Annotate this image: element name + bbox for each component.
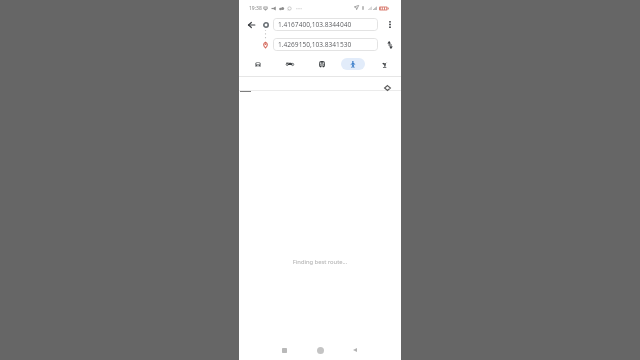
button[interactable]: Home <box>312 342 328 358</box>
staticText: 1.4167400,103.8344040 <box>278 20 352 29</box>
button[interactable]: Driving <box>246 58 270 70</box>
button[interactable]: Flights <box>373 58 397 70</box>
button[interactable]: More options <box>383 18 396 31</box>
button[interactable]: Transit <box>310 58 334 70</box>
button[interactable]: Two-wheeler <box>278 58 302 70</box>
button[interactable]: Back <box>243 17 259 33</box>
staticText: 1.4269150,103.8341530 <box>278 40 352 49</box>
button[interactable]: 1.4269150,103.8341530 <box>273 38 378 51</box>
button[interactable]: Back <box>347 342 363 358</box>
button[interactable]: 1.4167400,103.8344040 <box>273 18 378 31</box>
button[interactable]: Recent apps <box>276 342 292 358</box>
button[interactable]: Swap start and destination <box>383 38 396 51</box>
staticText: Finding best route... <box>239 258 401 266</box>
button[interactable]: Walking <box>341 58 365 70</box>
button[interactable]: Route options <box>381 82 393 94</box>
staticText: 19:38 <box>249 5 262 12</box>
